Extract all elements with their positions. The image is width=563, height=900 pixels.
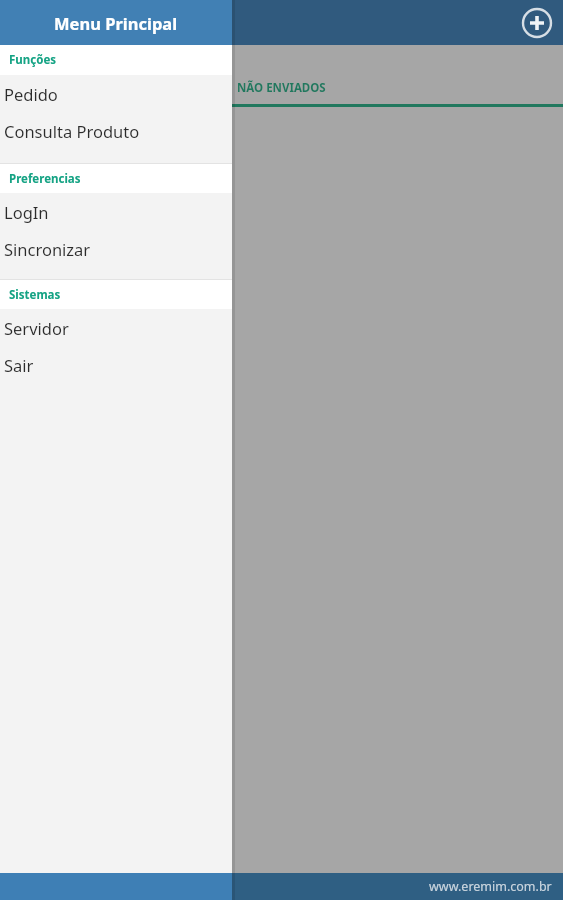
staticText: Sincronizar [4, 238, 91, 260]
button[interactable]: Adicionar [518, 4, 556, 42]
button[interactable]: NÃO ENVIADOS [0, 72, 563, 104]
staticText: Funções [9, 52, 57, 68]
button[interactable]: Sincronizar [0, 230, 232, 267]
staticText: NÃO ENVIADOS [237, 80, 326, 96]
staticText: Sistemas [9, 287, 61, 303]
staticText: Preferencias [9, 171, 81, 187]
staticText: www.eremim.com.br [429, 878, 552, 895]
button[interactable]: Consulta Produto [0, 112, 232, 149]
staticText: Sair [4, 354, 34, 376]
staticText: Menu Principal [54, 12, 178, 34]
staticText: Servidor [4, 317, 69, 339]
button[interactable]: LogIn [0, 193, 232, 230]
button[interactable]: Servidor [0, 309, 232, 346]
staticText: LogIn [4, 201, 49, 223]
staticText: Consulta Produto [4, 120, 140, 142]
staticText: Pedido [4, 83, 58, 105]
staticText: Orc. Enviado [30, 51, 98, 67]
button[interactable]: Pedido [0, 75, 232, 112]
button[interactable]: Sair [0, 346, 232, 383]
